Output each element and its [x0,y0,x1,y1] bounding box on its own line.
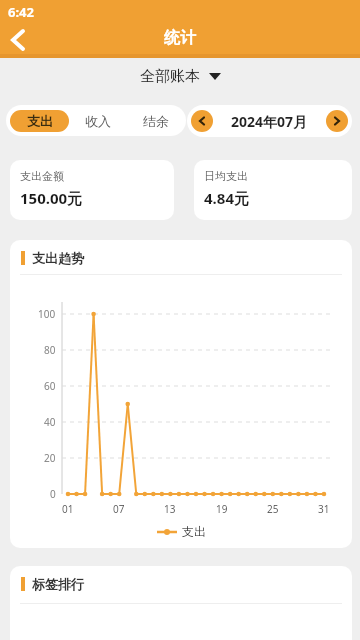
staticText: 日均支出 [204,169,248,183]
button[interactable] [191,110,213,132]
button[interactable]: 日均支出 [194,160,352,220]
staticText: 4.84元 [204,188,249,208]
staticText: 13 [164,502,176,516]
staticText: 80 [44,343,56,357]
staticText: 支出趋势 [32,250,84,266]
staticText: 31 [318,502,330,516]
staticText: 全部账本 [140,67,200,86]
staticText: 25 [267,502,279,516]
button[interactable] [2,24,34,56]
staticText: 结余 [143,113,169,129]
staticText: 20 [44,451,56,465]
button[interactable]: 收入 [69,105,127,136]
staticText: 支出 [182,524,206,539]
staticText: 01 [62,502,74,516]
button[interactable] [326,110,348,132]
button[interactable]: 支出 [10,110,69,132]
staticText: 标签排行 [32,576,84,592]
button[interactable]: 全部账本 [0,58,360,94]
staticText: 07 [113,502,125,516]
staticText: 6:42 [8,3,34,21]
staticText: 150.00元 [20,188,83,208]
staticText: 60 [44,379,56,393]
staticText: 0 [50,487,56,501]
staticText: 100 [38,307,56,321]
staticText: 19 [216,502,228,516]
staticText: 支出金额 [20,169,64,183]
staticText: 2024年07月 [231,112,308,131]
staticText: 支出 [27,113,53,129]
staticText: 统计 [164,28,196,48]
staticText: 收入 [85,113,111,129]
staticText: 40 [44,415,56,429]
button[interactable]: 支出金额 [10,160,174,220]
button[interactable]: 结余 [127,105,185,136]
